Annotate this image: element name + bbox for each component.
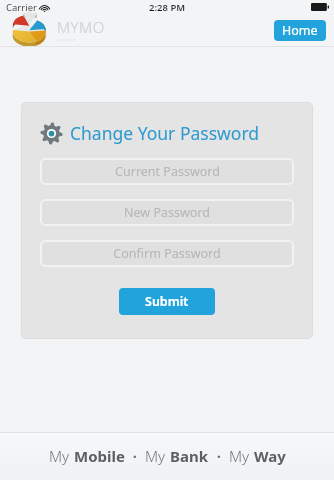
staticText: Way (254, 446, 286, 466)
staticText: MYMO (57, 17, 105, 37)
staticText: · (209, 446, 229, 466)
button[interactable]: Submit (119, 288, 215, 315)
button[interactable]: Current Password (40, 158, 294, 185)
staticText: 2:28 PM (149, 1, 186, 14)
staticText: Carrier (6, 1, 37, 14)
button[interactable]: Confirm Password (40, 240, 294, 267)
staticText: My (229, 446, 254, 466)
staticText: New Password (124, 204, 210, 221)
staticText: Change Your Password (70, 121, 260, 145)
button[interactable]: New Password (40, 199, 294, 226)
staticText: Home (282, 22, 318, 39)
staticText: Mobile (74, 446, 125, 466)
staticText: Submit (145, 293, 189, 310)
button[interactable]: Home (274, 20, 326, 41)
staticText: · (125, 446, 145, 466)
staticText: My (145, 446, 170, 466)
staticText: Current Password (115, 163, 220, 180)
staticText: Confirm Password (113, 245, 221, 262)
staticText: e x p r e s s (57, 37, 76, 42)
staticText: Bank (170, 446, 209, 466)
staticText: My (49, 446, 74, 466)
